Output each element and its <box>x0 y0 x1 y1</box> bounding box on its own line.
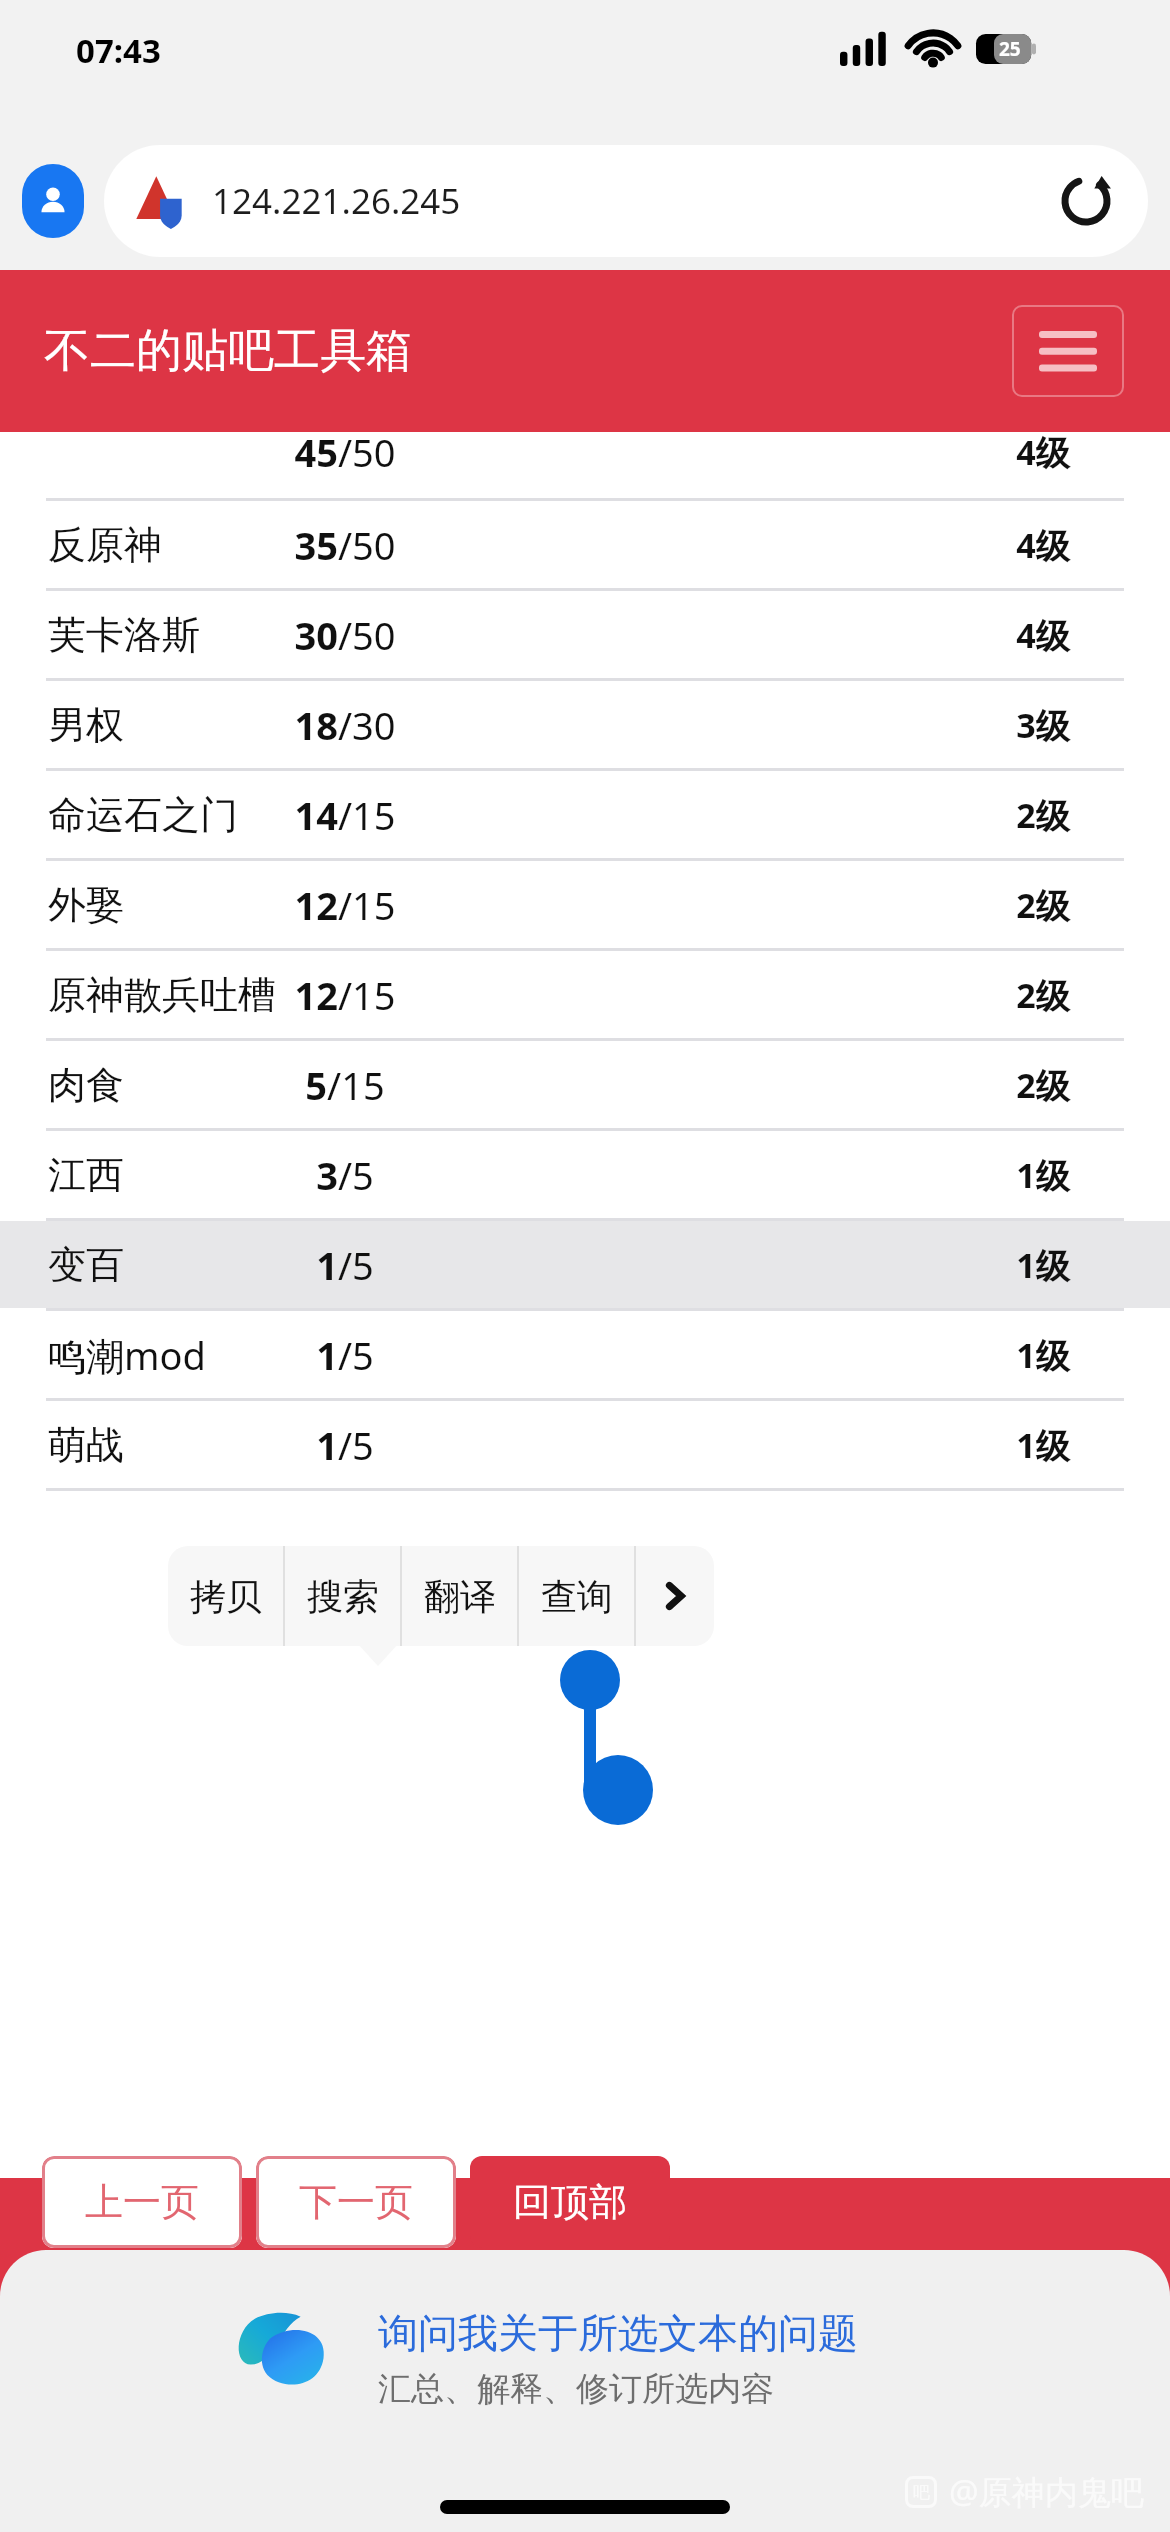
staticText: 查询 <box>541 1574 613 1619</box>
button[interactable]: 江西 <box>0 1131 1170 1218</box>
button[interactable]: 下一页 <box>256 2156 456 2248</box>
staticText: 4级 <box>1016 522 1070 568</box>
staticText: 吧 <box>913 2482 930 2503</box>
staticText: 推ICP备16000050号 <box>479 2282 754 2323</box>
staticText: 1/5 <box>215 1239 475 1291</box>
button[interactable]: 拷贝 <box>168 1546 283 1646</box>
button[interactable]: 上一页 <box>42 2156 242 2248</box>
staticText: 2级 <box>1016 1062 1070 1108</box>
button[interactable]: 变百 <box>0 1221 1170 1308</box>
staticText: 萌战 <box>48 1421 124 1469</box>
button[interactable]: 芙卡洛斯 <box>0 591 1170 678</box>
staticText: 1级 <box>1016 1332 1070 1378</box>
staticText: 翻译 <box>424 1574 496 1619</box>
button[interactable]: 查询 <box>519 1546 634 1646</box>
staticText: 外娶 <box>48 881 124 929</box>
staticText: 江西 <box>48 1151 124 1199</box>
staticText: 25 <box>999 36 1021 62</box>
staticText: 12/15 <box>215 879 475 931</box>
staticText: 原神散兵吐槽 <box>48 971 276 1019</box>
staticText: 14/15 <box>215 789 475 841</box>
staticText: 2级 <box>1016 882 1070 928</box>
button[interactable]: 肉食 <box>0 1041 1170 1128</box>
button[interactable]: 命运石之门 <box>0 771 1170 858</box>
staticText: 12/15 <box>215 969 475 1021</box>
button[interactable]: Account <box>22 164 84 238</box>
staticText: 上一页 <box>85 2178 199 2226</box>
button[interactable]: 原神散兵吐槽 <box>0 951 1170 1038</box>
button[interactable]: 询问我关于所选文本的问题 <box>0 2250 1170 2532</box>
staticText: 询问我关于所选文本的问题 <box>378 2308 858 2358</box>
staticText: 反原神 <box>48 521 162 569</box>
staticText: 鸣潮mod <box>48 1329 206 1381</box>
staticText: 芙卡洛斯 <box>48 611 200 659</box>
staticText: 1级 <box>1016 1152 1070 1198</box>
staticText: 3/5 <box>215 1149 475 1201</box>
staticText: 回顶部 <box>513 2178 627 2226</box>
button[interactable]: 反原神 <box>0 501 1170 588</box>
button[interactable]: 回顶部 <box>470 2156 670 2248</box>
button[interactable]: More <box>636 1546 714 1646</box>
staticText: 男权 <box>48 701 124 749</box>
button[interactable]: Menu <box>1012 305 1124 397</box>
button[interactable]: 翻译 <box>402 1546 517 1646</box>
staticText: 45/50 <box>215 426 475 478</box>
button[interactable]: 萌战 <box>0 1401 1170 1488</box>
staticText: 汇总、解释、修订所选内容 <box>378 2368 774 2410</box>
button[interactable]: 45/50 <box>0 408 1170 495</box>
staticText: 变百 <box>48 1241 124 1289</box>
staticText: 1/5 <box>215 1329 475 1381</box>
staticText: 下一页 <box>299 2178 413 2226</box>
staticText: 命运石之门 <box>48 791 238 839</box>
staticText: 35/50 <box>215 519 475 571</box>
staticText: 拷贝 <box>190 1574 262 1619</box>
staticText: 1级 <box>1016 1422 1070 1468</box>
button[interactable]: 搜索 <box>285 1546 400 1646</box>
button[interactable]: 鸣潮mod <box>0 1311 1170 1398</box>
staticText: @原神内鬼吧 <box>949 2469 1144 2514</box>
staticText: 1级 <box>1016 1242 1070 1288</box>
staticText: 4级 <box>1016 612 1070 658</box>
staticText: 不二的贴吧工具箱 <box>44 322 412 380</box>
staticText: 3级 <box>1016 702 1070 748</box>
staticText: 5/15 <box>215 1059 475 1111</box>
staticText: 124.221.26.245 <box>212 177 461 225</box>
staticText: 4级 <box>1016 429 1070 475</box>
button[interactable]: 124.221.26.245 <box>104 145 1148 257</box>
staticText: 07:43 <box>76 28 161 73</box>
staticText: 18/30 <box>215 699 475 751</box>
button[interactable]: 外娶 <box>0 861 1170 948</box>
staticText: 1/5 <box>215 1419 475 1471</box>
staticText: 搜索 <box>307 1574 379 1619</box>
button[interactable]: 男权 <box>0 681 1170 768</box>
staticText: 2级 <box>1016 792 1070 838</box>
staticText: 2级 <box>1016 972 1070 1018</box>
staticText: 30/50 <box>215 609 475 661</box>
staticText: 肉食 <box>48 1061 124 1109</box>
button[interactable]: Reload <box>1058 173 1114 229</box>
